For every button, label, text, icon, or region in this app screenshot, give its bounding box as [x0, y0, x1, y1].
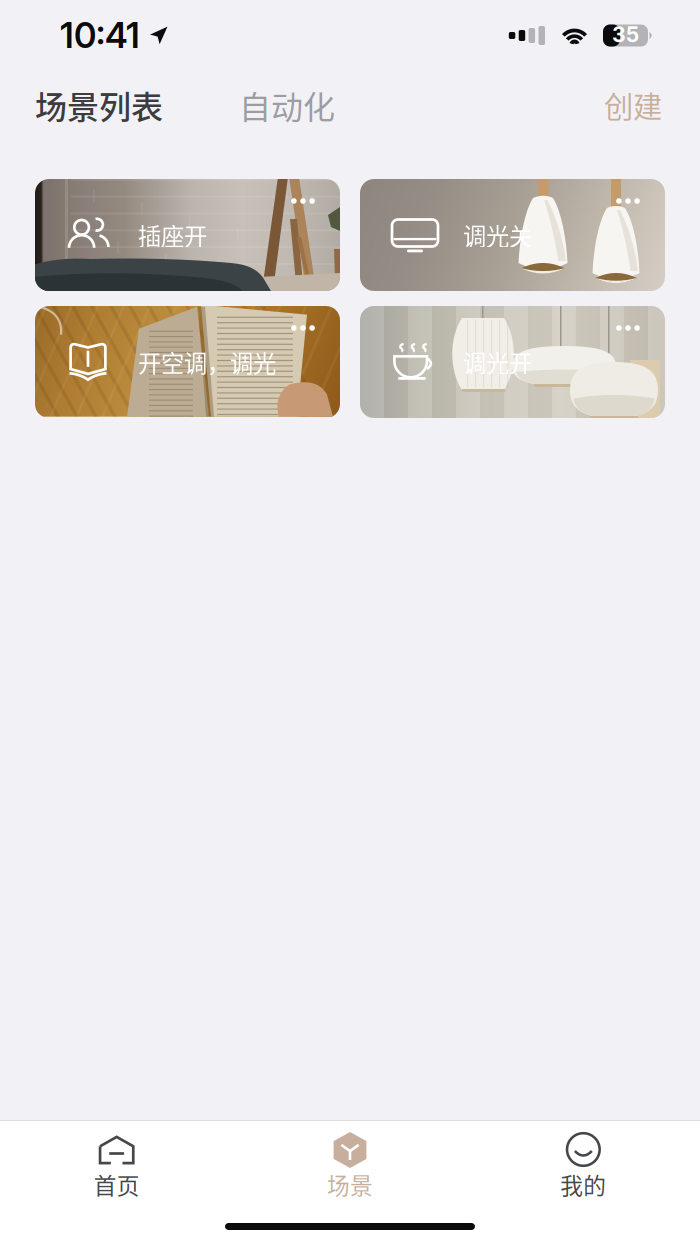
button[interactable]: 场景: [233, 1121, 467, 1213]
staticText: 创建: [604, 84, 662, 126]
staticText: 场景列表: [35, 82, 163, 128]
staticText: 35: [612, 22, 639, 47]
staticText: 10:41: [60, 14, 140, 56]
button[interactable]: 首页: [0, 1121, 233, 1213]
button[interactable]: 调光开: [360, 306, 665, 418]
staticText: 场景: [327, 1168, 373, 1201]
button[interactable]: 调光关: [360, 179, 665, 291]
button[interactable]: 开空调，调光: [35, 306, 340, 418]
button[interactable]: 更多: [603, 185, 653, 217]
staticText: 开空调，调光: [138, 345, 276, 379]
button[interactable]: 更多: [278, 312, 328, 344]
staticText: 首页: [94, 1168, 140, 1201]
button[interactable]: 插座开: [35, 179, 340, 291]
button[interactable]: 更多: [278, 185, 328, 217]
staticText: 调光开: [463, 345, 532, 379]
button[interactable]: 场景列表: [35, 72, 163, 138]
staticText: 我的: [560, 1168, 606, 1201]
button[interactable]: 创建: [604, 74, 662, 136]
staticText: 插座开: [138, 218, 207, 252]
staticText: 调光关: [463, 218, 532, 252]
staticText: 自动化: [239, 82, 335, 128]
button[interactable]: 更多: [603, 312, 653, 344]
button[interactable]: 自动化: [239, 72, 335, 138]
button[interactable]: 我的: [467, 1121, 700, 1213]
